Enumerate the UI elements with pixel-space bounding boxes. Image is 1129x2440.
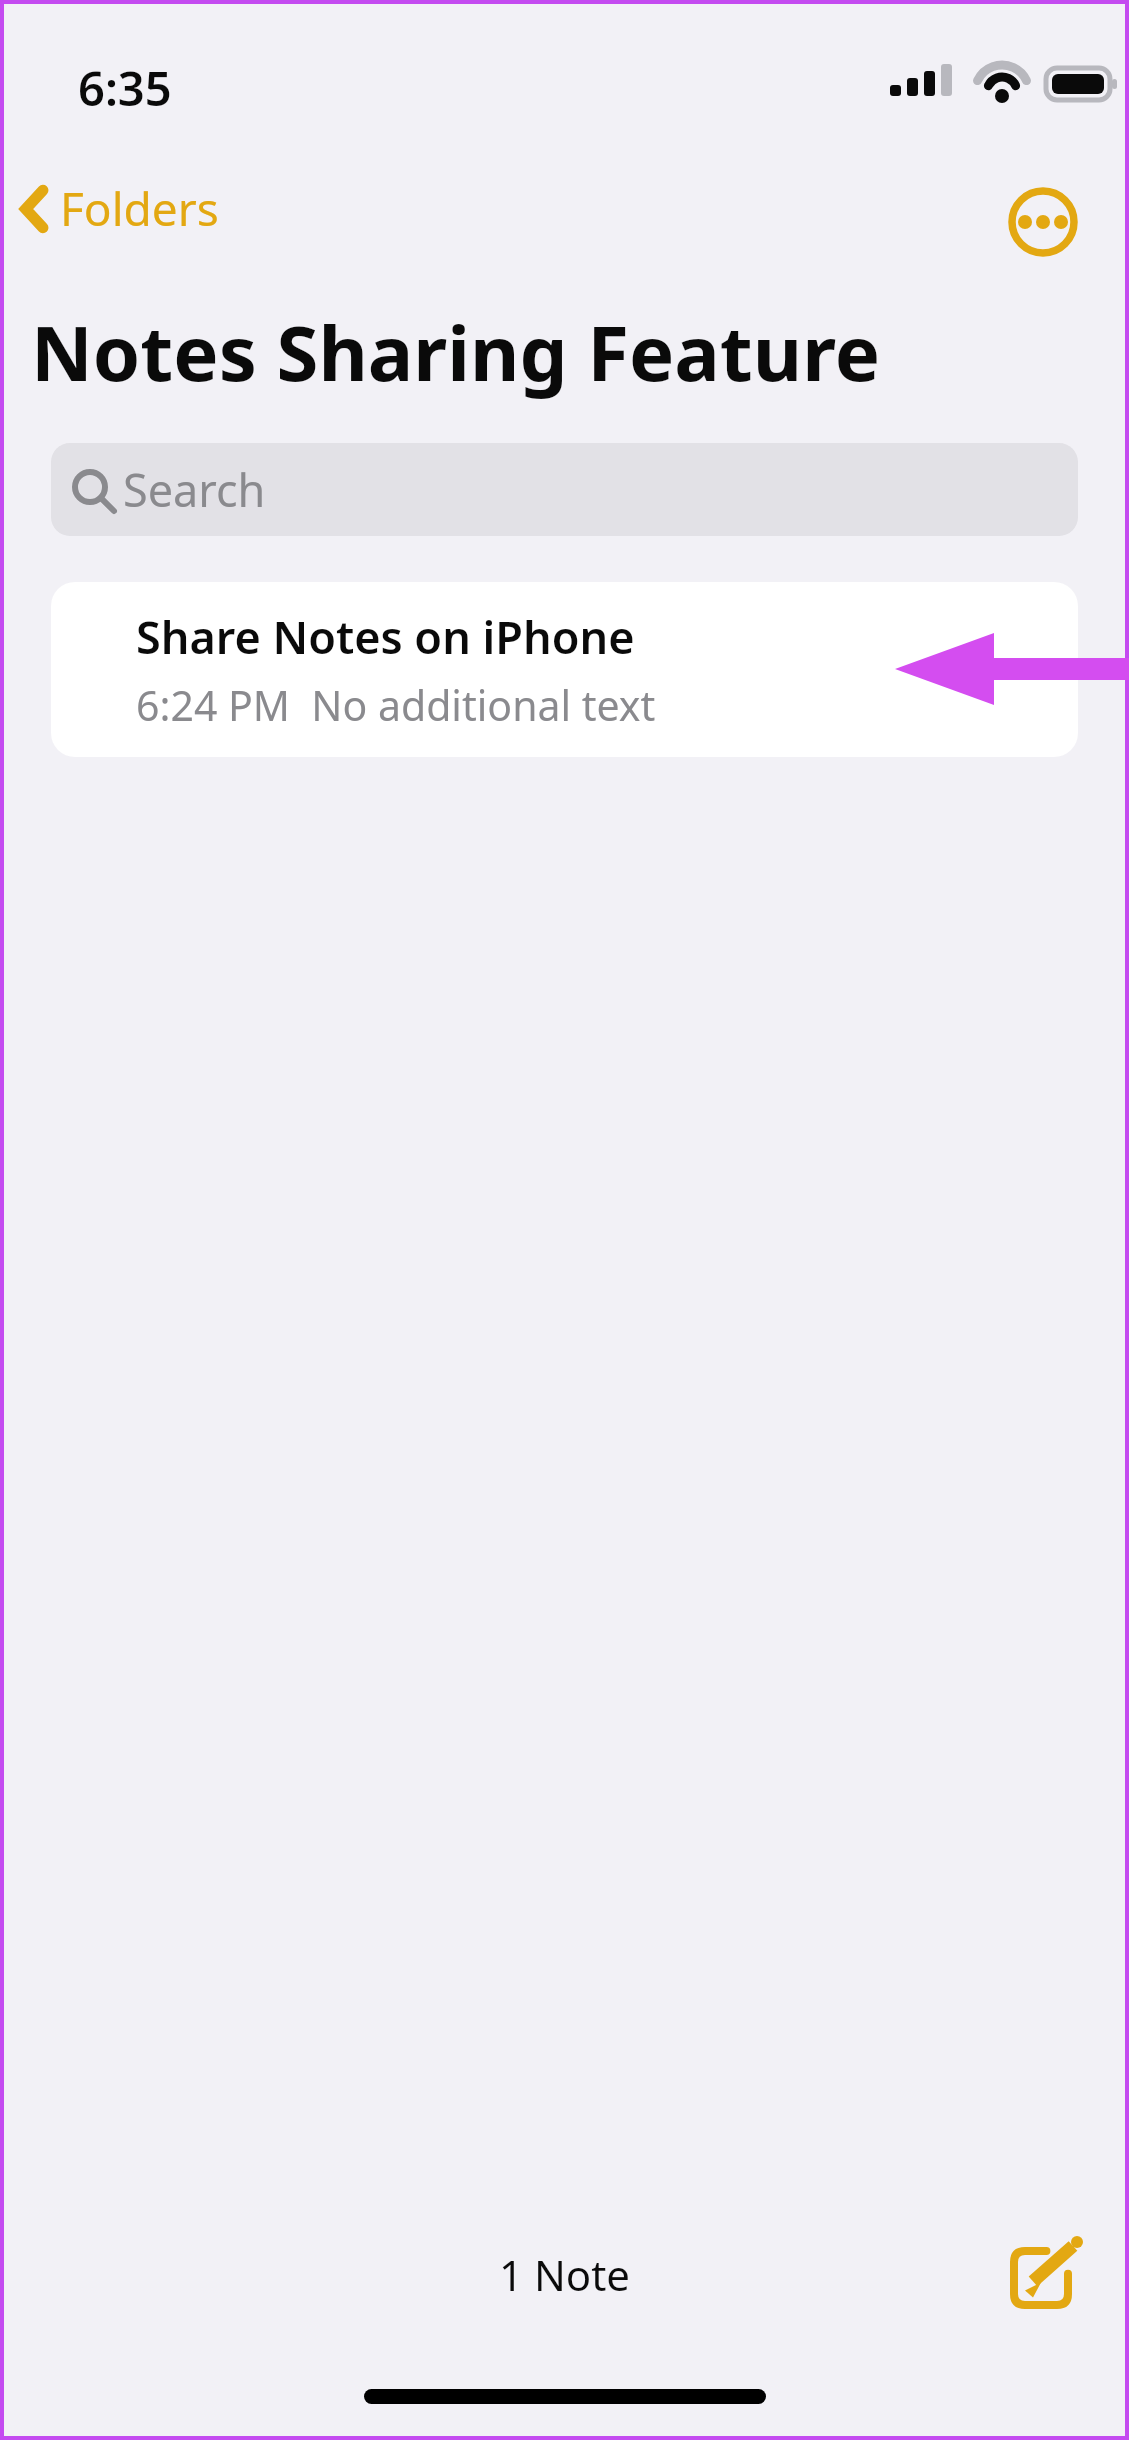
staticText: 6:24 PM No additional text bbox=[136, 677, 656, 733]
button[interactable]: Share Notes on iPhone bbox=[51, 582, 1078, 757]
button[interactable]: Compose new note bbox=[999, 2226, 1093, 2320]
staticText: Notes Sharing Feature bbox=[31, 300, 881, 404]
staticText: Share Notes on iPhone bbox=[136, 606, 635, 667]
button[interactable]: Folders bbox=[4, 167, 239, 250]
staticText: Search bbox=[123, 459, 266, 520]
staticText: 1 Note bbox=[4, 2246, 1125, 2303]
button[interactable]: Search bbox=[51, 443, 1078, 536]
button[interactable]: More options bbox=[999, 178, 1087, 266]
staticText: Folders bbox=[60, 177, 219, 240]
staticText: 6:35 bbox=[78, 56, 172, 120]
